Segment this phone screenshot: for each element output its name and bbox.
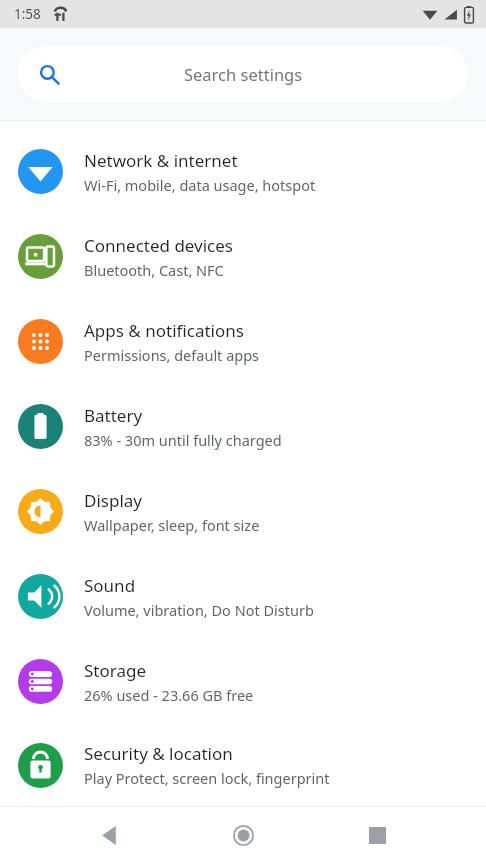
button[interactable]: Battery [0, 384, 486, 469]
staticText: Apps & notifications [84, 319, 244, 342]
staticText: Bluetooth, Cast, NFC [84, 260, 224, 280]
button[interactable]: Recent apps [347, 807, 407, 864]
staticText: 1:58 [14, 5, 41, 23]
button[interactable]: Storage [0, 639, 486, 724]
button[interactable]: Apps & notifications [0, 299, 486, 384]
staticText: Storage [84, 659, 147, 682]
button[interactable]: Connected devices [0, 214, 486, 299]
staticText: Permissions, default apps [84, 345, 260, 365]
staticText: 83% - 30m until fully charged [84, 430, 282, 450]
staticText: Wallpaper, sleep, font size [84, 515, 260, 535]
staticText: Security & location [84, 742, 233, 765]
staticText: 26% used - 23.66 GB free [84, 685, 254, 705]
staticText: Wi-Fi, mobile, data usage, hotspot [84, 175, 316, 195]
staticText: Search settings [184, 63, 303, 85]
staticText: Battery [84, 404, 143, 427]
button[interactable]: Back [80, 807, 140, 864]
button[interactable]: Display [0, 469, 486, 554]
staticText: Display [84, 489, 142, 512]
staticText: Network & internet [84, 149, 238, 172]
button[interactable]: Sound [0, 554, 486, 639]
staticText: Volume, vibration, Do Not Disturb [84, 600, 314, 620]
staticText: Sound [84, 574, 136, 597]
button[interactable]: Search settings [18, 46, 468, 102]
button[interactable]: Security & location [0, 724, 486, 806]
button[interactable]: Home [213, 807, 273, 864]
staticText: Connected devices [84, 234, 234, 257]
staticText: Play Protect, screen lock, fingerprint [84, 768, 330, 788]
button[interactable]: Network & internet [0, 129, 486, 214]
